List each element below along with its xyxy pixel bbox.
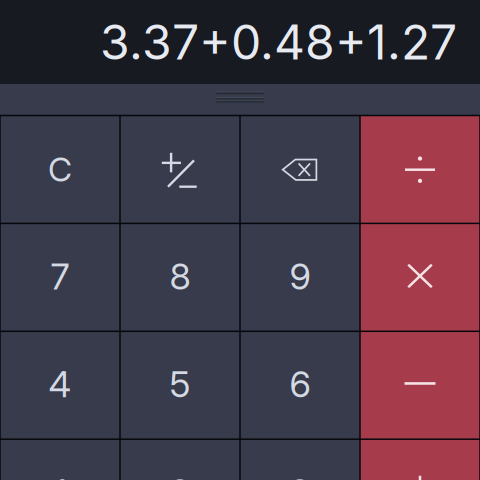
- button[interactable]: 2: [121, 440, 239, 480]
- staticText: 3.37+0.48+1.27: [100, 14, 457, 70]
- button[interactable]: 5: [121, 332, 239, 438]
- button[interactable]: Delete: [241, 116, 359, 223]
- staticText: 5: [169, 363, 190, 405]
- button[interactable]: Plus or minus: [121, 116, 239, 223]
- button[interactable]: Divide: [361, 116, 479, 223]
- button[interactable]: Add: [361, 440, 479, 480]
- staticText: C: [48, 150, 72, 189]
- staticText: 6: [289, 363, 310, 405]
- button[interactable]: 3: [241, 440, 359, 480]
- staticText: 2: [169, 471, 190, 480]
- staticText: 4: [48, 363, 71, 405]
- staticText: 8: [169, 255, 190, 298]
- button[interactable]: 1: [1, 440, 119, 480]
- button[interactable]: 9: [241, 224, 359, 331]
- button[interactable]: Multiply: [361, 224, 479, 331]
- staticText: 3: [289, 471, 311, 480]
- staticText: 9: [289, 255, 310, 298]
- button[interactable]: 6: [241, 332, 359, 438]
- button[interactable]: 8: [121, 224, 239, 331]
- staticText: 1: [53, 471, 66, 480]
- button[interactable]: 7: [1, 224, 119, 331]
- button[interactable]: 4: [1, 332, 119, 438]
- staticText: 7: [50, 255, 69, 298]
- button[interactable]: Subtract: [361, 332, 479, 438]
- button[interactable]: Clear: [1, 116, 119, 223]
